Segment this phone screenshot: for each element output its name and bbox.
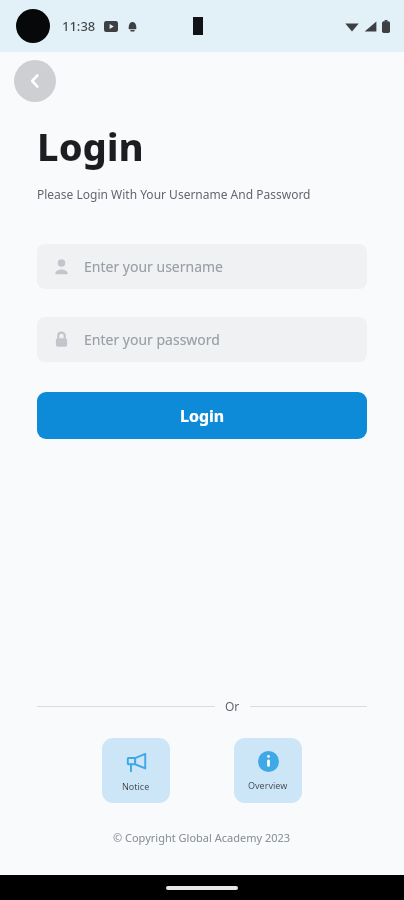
button[interactable]: Back xyxy=(14,60,56,102)
staticText: Or xyxy=(225,698,240,714)
staticText: Login xyxy=(37,120,144,172)
staticText: Notice xyxy=(122,780,150,792)
button[interactable]: Login xyxy=(37,392,367,439)
staticText: Enter your password xyxy=(84,330,220,349)
button[interactable]: Overview xyxy=(234,738,302,803)
staticText: Login xyxy=(180,405,225,427)
staticText: Overview xyxy=(248,779,288,791)
button[interactable]: Enter your username xyxy=(37,244,367,289)
staticText: Enter your username xyxy=(84,257,224,276)
button[interactable]: Enter your password xyxy=(37,317,367,362)
staticText: Please Login With Your Username And Pass… xyxy=(37,186,311,202)
button[interactable]: Notice xyxy=(102,738,170,803)
staticText: 11:38 xyxy=(62,17,96,35)
staticText: © Copyright Global Academy 2023 xyxy=(113,830,291,845)
